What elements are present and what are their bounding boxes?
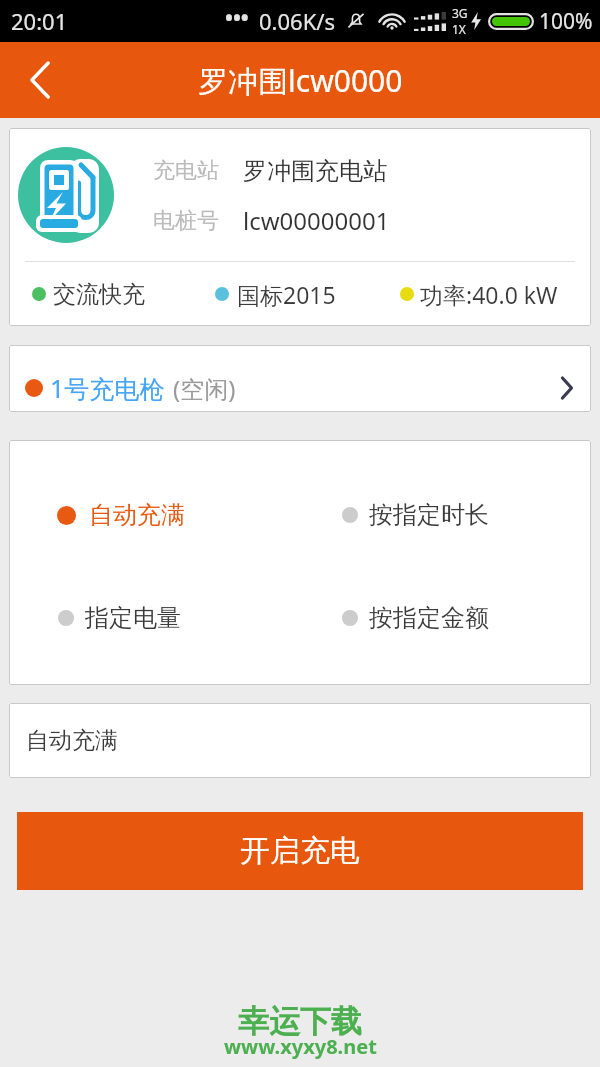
staticText: 0.06K/s <box>259 6 335 36</box>
staticText: 罗冲围lcw0000 <box>198 60 403 101</box>
staticText: (空闲) <box>173 372 236 405</box>
button[interactable]: 开启充电 <box>17 812 583 890</box>
staticText: 1号充电枪 <box>50 371 165 405</box>
staticText: www.xyxy8.net <box>224 1033 377 1060</box>
staticText: 按指定时长 <box>369 500 489 530</box>
staticText: 充电站 <box>153 157 243 185</box>
staticText: ••• <box>225 4 249 33</box>
staticText: 自动充满 <box>26 726 118 755</box>
staticText: lcw00000001 <box>243 204 390 237</box>
staticText: 罗冲围充电站 <box>243 156 387 186</box>
button[interactable]: 按指定金额 <box>300 603 591 633</box>
staticText: 20:01 <box>11 6 68 36</box>
button[interactable]: 自动充满 <box>9 703 591 778</box>
button[interactable]: 指定电量 <box>9 603 300 633</box>
staticText: 按指定金额 <box>369 603 489 633</box>
staticText: 交流快充 <box>53 280 145 309</box>
staticText: 国标2015 <box>237 279 336 310</box>
button[interactable]: 1号充电枪 <box>9 345 591 412</box>
staticText: 1X <box>452 21 466 37</box>
staticText: 3G <box>452 5 468 21</box>
button[interactable]: 自动充满 <box>9 500 300 530</box>
staticText: 自动充满 <box>89 500 185 530</box>
button[interactable]: 按指定时长 <box>300 500 591 530</box>
staticText: 100% <box>539 7 593 36</box>
staticText: 开启充电 <box>240 832 360 870</box>
staticText: 指定电量 <box>85 603 181 633</box>
staticText: 电桩号 <box>153 207 243 235</box>
staticText: 功率:40.0 kW <box>420 279 558 310</box>
button[interactable]: Back <box>0 42 82 118</box>
staticText: 幸运下载 <box>238 1002 362 1041</box>
